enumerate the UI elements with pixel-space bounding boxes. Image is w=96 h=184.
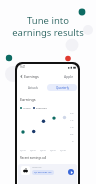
staticText: 2.0 bbox=[70, 112, 74, 115]
staticText: Quarterly bbox=[56, 86, 69, 90]
staticText: Apple bbox=[64, 74, 74, 79]
staticText: Q4 21 bbox=[50, 149, 56, 152]
staticText: Apple Inc. bbox=[32, 166, 42, 169]
staticText: Q2 21 bbox=[30, 149, 36, 152]
staticText: Q1 22 bbox=[60, 149, 66, 152]
staticText: 1.5 bbox=[70, 119, 74, 122]
staticText: Expected bbox=[36, 106, 47, 109]
staticText: Q4 earnings call bbox=[34, 171, 52, 174]
staticText: Q3 21 bbox=[40, 149, 46, 152]
staticText: 0 bbox=[72, 140, 74, 143]
staticText: Earnings bbox=[24, 74, 39, 79]
staticText: Actuals bbox=[28, 86, 38, 90]
staticText: 9:41 bbox=[20, 65, 26, 69]
button[interactable]: Quarterly bbox=[47, 84, 77, 91]
staticText: Recent earnings call bbox=[20, 156, 47, 160]
button[interactable]: Play bbox=[68, 169, 74, 175]
staticText: 0.5 bbox=[70, 133, 74, 136]
staticText: Tune into earnings results bbox=[0, 14, 96, 39]
button[interactable]: Back bbox=[19, 74, 24, 79]
staticText: Earnings bbox=[20, 97, 36, 102]
staticText: 1.0 bbox=[70, 126, 74, 129]
staticText: Actual bbox=[23, 106, 31, 109]
button[interactable]: Apple Inc. bbox=[18, 164, 77, 184]
staticText: Q1 21 bbox=[20, 149, 26, 152]
button[interactable]: Actuals bbox=[18, 84, 47, 91]
